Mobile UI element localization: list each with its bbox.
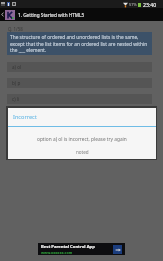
staticText: www.xxxxxx.com	[41, 250, 73, 255]
button[interactable]: Back	[0, 8, 5, 21]
staticText: noted	[76, 149, 89, 155]
other: Open ad	[113, 245, 122, 254]
button[interactable]: The structure of ordered and unordered l…	[7, 32, 152, 55]
staticText: 1. Getting Started with HTML5	[18, 12, 85, 18]
staticText: 57%	[129, 2, 137, 7]
staticText: c) li	[12, 96, 20, 102]
staticText: The structure of ordered and unordered l…	[10, 34, 151, 54]
staticText: Q. 1/58	[8, 26, 23, 32]
button[interactable]: Best Parental Control App	[38, 243, 125, 255]
staticText: Best Parental Control App	[41, 244, 95, 250]
staticText: Incorrect	[13, 113, 37, 121]
button[interactable]: noted	[68, 148, 97, 156]
staticText: a) ol	[12, 64, 22, 70]
staticText: b) p	[12, 80, 21, 86]
staticText: 23:40	[143, 1, 157, 8]
staticText: option a) ol is incorrect, please try ag…	[37, 136, 127, 143]
